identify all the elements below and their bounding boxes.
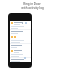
button[interactable] [11, 49, 31, 53]
staticText: with activity log [21, 6, 44, 10]
button[interactable]: Phone preview [8, 13, 32, 68]
staticText: Ring in Door [23, 2, 41, 6]
button[interactable] [11, 35, 31, 39]
button[interactable] [11, 21, 31, 25]
